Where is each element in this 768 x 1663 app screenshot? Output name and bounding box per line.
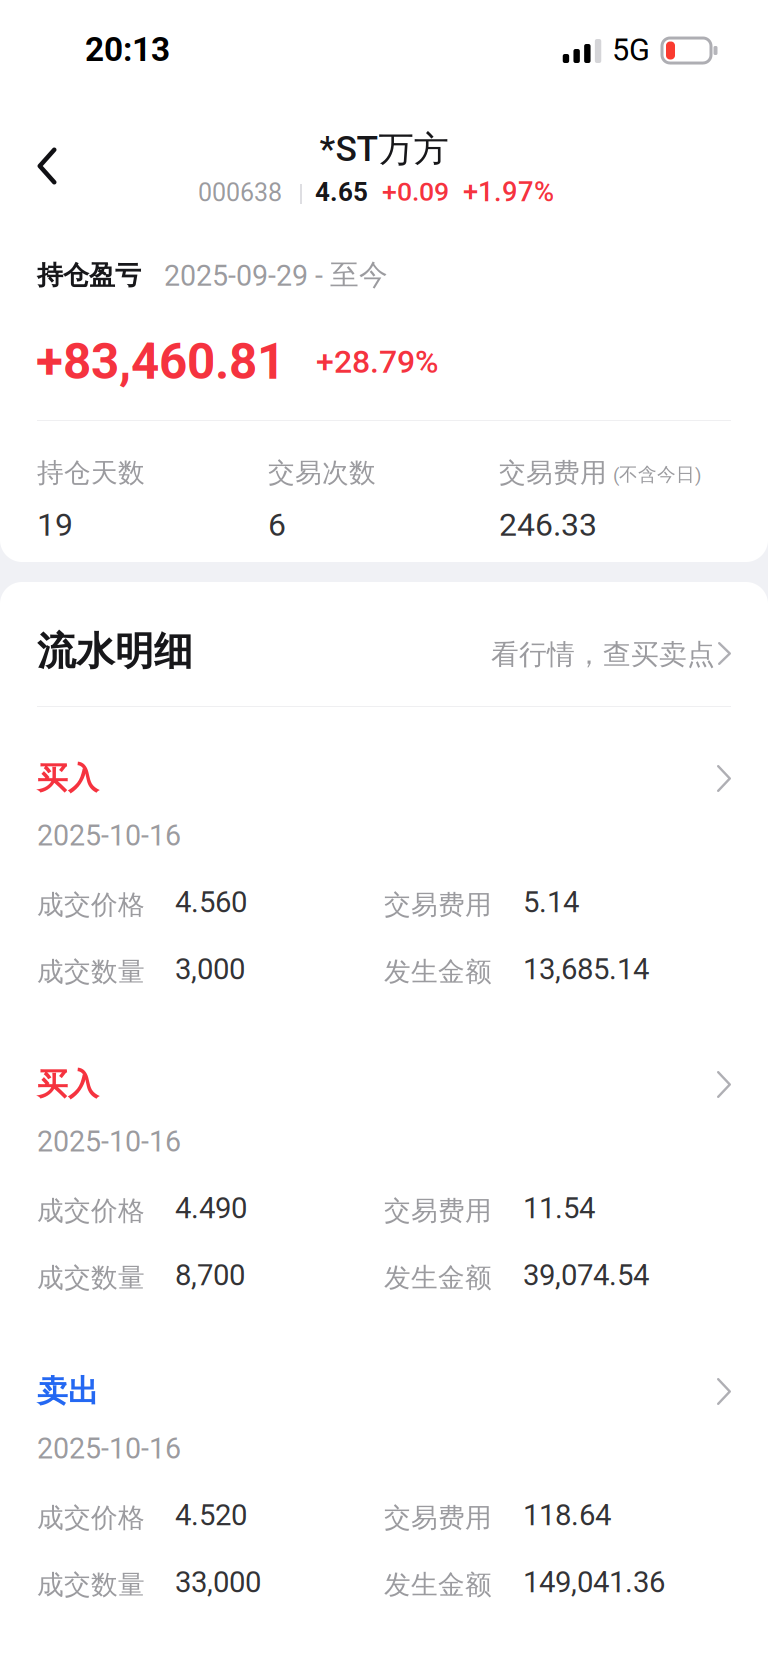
staticText: 2025-10-16 — [37, 819, 181, 853]
staticText: 8,700 — [175, 1258, 245, 1292]
staticText: 发生金额 — [384, 955, 492, 989]
staticText: +83,460.81 — [36, 333, 285, 391]
staticText: +28.79% — [316, 343, 439, 380]
staticText: 2025-10-16 — [37, 1432, 181, 1466]
staticText: 246.33 — [499, 506, 597, 543]
staticText: 4.65 — [315, 177, 368, 207]
staticText: (不含今日) — [613, 463, 701, 486]
staticText: +0.09 — [382, 176, 449, 207]
staticText: 成交价格 — [37, 888, 145, 922]
button[interactable]: 买入 — [0, 1065, 768, 1331]
staticText: 5G — [612, 32, 650, 68]
staticText: 交易次数 — [268, 456, 376, 490]
staticText: 成交价格 — [37, 1501, 145, 1535]
button[interactable]: 买入 — [0, 759, 768, 1025]
staticText: 持仓天数 — [37, 456, 145, 490]
staticText: 2025-09-29 - 至今 — [164, 257, 388, 293]
staticText: 交易费用 — [499, 456, 607, 490]
staticText: 卖出 — [37, 1372, 99, 1411]
staticText: 发生金额 — [384, 1568, 492, 1602]
staticText: 5.14 — [523, 885, 579, 919]
staticText: 成交数量 — [37, 1568, 145, 1602]
staticText: 4.560 — [175, 885, 247, 919]
staticText: 118.64 — [523, 1498, 611, 1532]
staticText: 4.520 — [175, 1498, 247, 1532]
button[interactable]: Back — [9, 128, 85, 204]
staticText: *ST万方 — [319, 127, 448, 171]
staticText: 19 — [37, 506, 73, 543]
button[interactable]: 卖出 — [0, 1372, 768, 1638]
staticText: 看行情，查买卖点 — [491, 637, 715, 672]
staticText: 3,000 — [175, 952, 245, 986]
staticText: 买入 — [37, 759, 99, 798]
staticText: 11.54 — [523, 1191, 595, 1225]
staticText: 交易费用 — [384, 1194, 492, 1228]
staticText: 4.490 — [175, 1191, 247, 1225]
staticText: 2025-10-16 — [37, 1125, 181, 1159]
staticText: 买入 — [37, 1065, 99, 1104]
staticText: 成交数量 — [37, 1261, 145, 1295]
staticText: 流水明细 — [37, 627, 193, 676]
staticText: 成交数量 — [37, 955, 145, 989]
staticText: 000638 — [198, 178, 282, 207]
staticText: 6 — [268, 506, 286, 543]
staticText: 交易费用 — [384, 888, 492, 922]
staticText: 13,685.14 — [523, 952, 649, 986]
staticText: 149,041.36 — [523, 1565, 665, 1599]
staticText: 39,074.54 — [523, 1258, 649, 1292]
staticText: 33,000 — [175, 1565, 261, 1599]
staticText: +1.97% — [463, 176, 554, 208]
staticText: 持仓盈亏 — [37, 259, 141, 292]
staticText: 交易费用 — [384, 1501, 492, 1535]
staticText: 发生金额 — [384, 1261, 492, 1295]
button[interactable]: 流水明细 — [0, 625, 768, 703]
staticText: 成交价格 — [37, 1194, 145, 1228]
staticText: 20:13 — [85, 30, 170, 69]
